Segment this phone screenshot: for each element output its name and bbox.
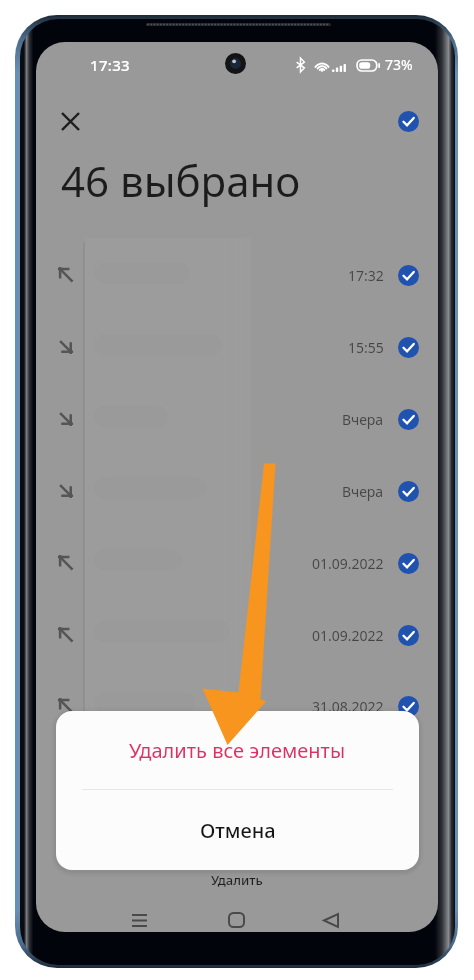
button[interactable]: Вчера [36,456,438,526]
button[interactable]: 01.09.2022 [36,528,438,598]
staticText: Удалить все элементы [129,737,346,764]
button[interactable]: 17:32 [36,240,438,310]
staticText: 01.09.2022 [312,554,384,573]
button[interactable]: Select all [388,101,428,141]
staticText: 01.09.2022 [312,626,384,645]
button[interactable]: Recent apps [121,906,157,932]
button[interactable]: Home [218,906,254,932]
button[interactable]: 31.08.2022 [36,743,438,813]
button[interactable]: Отмена [56,790,419,870]
staticText: Вчера [342,410,384,429]
button[interactable]: 15:55 [36,312,438,382]
button[interactable]: Вчера [36,384,438,454]
staticText: Удалить [211,871,263,889]
staticText: 46 выбрано [61,152,301,209]
staticText: 31.08.2022 [312,697,384,716]
button[interactable]: Close [50,101,90,141]
staticText: 17:32 [348,266,384,285]
staticText: 17:33 [90,55,130,75]
staticText: 15:55 [348,338,384,357]
staticText: Вчера [342,482,384,501]
button[interactable]: Удалить все элементы [56,711,419,789]
staticText: 73% [385,55,413,74]
button[interactable]: 01.09.2022 [36,600,438,670]
staticText: Отмена [200,817,276,844]
button[interactable]: Back [313,906,349,932]
button[interactable]: 31.08.2022 [36,671,438,741]
